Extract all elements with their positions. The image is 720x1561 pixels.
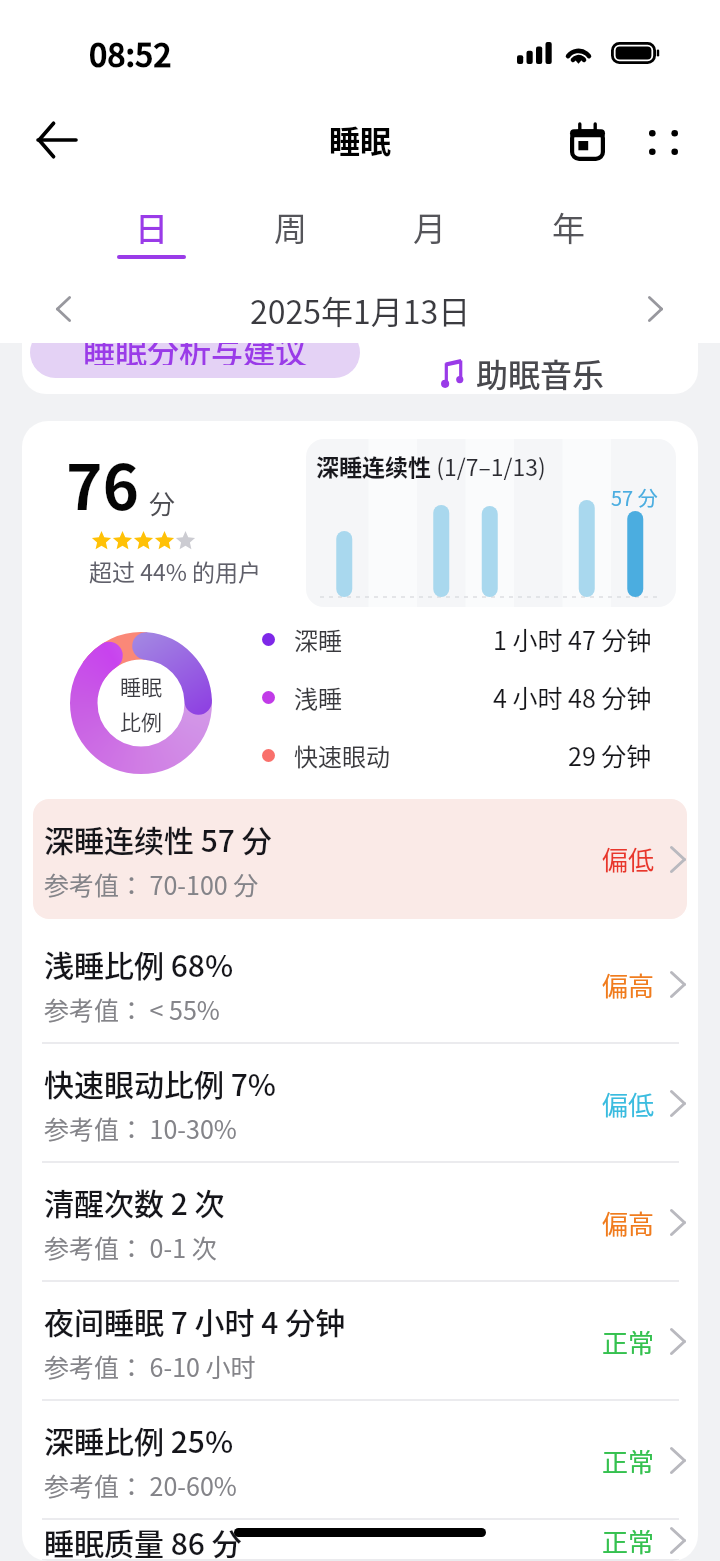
button[interactable]: 清醒次数 2 次	[22, 1163, 698, 1282]
staticText: 睡眠	[120, 671, 162, 701]
staticText: 深睡连续性	[316, 449, 431, 482]
staticText: 快速眼动比例 7%	[44, 1061, 277, 1104]
staticText: 偏高	[602, 966, 655, 1004]
button[interactable]: Previous day	[28, 274, 98, 343]
staticText: 睡眠质量 86 分	[44, 1520, 242, 1561]
button[interactable]: 浅睡	[262, 679, 652, 715]
staticText: 参考值： 10-30%	[44, 1110, 237, 1146]
staticText: 周	[274, 203, 307, 251]
button[interactable]: More options	[628, 110, 698, 174]
button[interactable]: 睡眠质量 86 分	[22, 1520, 698, 1561]
button[interactable]: Next day	[620, 274, 690, 343]
button[interactable]: 深睡	[262, 621, 652, 657]
staticText: 参考值： 70-100 分	[44, 866, 259, 902]
staticText: 清醒次数 2 次	[44, 1180, 225, 1223]
staticText: 参考值： 20-60%	[44, 1467, 237, 1503]
staticText: 年	[552, 203, 585, 251]
staticText: 29 分钟	[568, 737, 652, 773]
staticText: 08:52	[89, 30, 172, 76]
staticText: 正常	[602, 1442, 655, 1480]
button[interactable]: 夜间睡眠 7 小时 4 分钟	[22, 1282, 698, 1401]
button[interactable]: Back	[21, 105, 91, 175]
button[interactable]: 快速眼动比例 7%	[22, 1044, 698, 1163]
button[interactable]: 睡眠分析与建议	[30, 343, 360, 378]
staticText: 57 分	[611, 483, 658, 512]
staticText: 参考值： 0-1 次	[44, 1229, 217, 1265]
staticText: 助眠音乐	[476, 350, 605, 394]
staticText: 分	[149, 484, 176, 522]
staticText: 深睡连续性 57 分	[44, 817, 272, 860]
staticText: 深睡比例 25%	[44, 1418, 234, 1461]
button[interactable]: Calendar	[551, 106, 623, 178]
button[interactable]: 年	[499, 185, 638, 268]
staticText: (1/7–1/13)	[431, 449, 546, 482]
staticText: 偏低	[602, 1085, 655, 1123]
staticText: 睡眠	[329, 117, 391, 162]
button[interactable]: 助眠音乐	[369, 350, 698, 394]
staticText: 参考值： 6-10 小时	[44, 1348, 256, 1384]
button[interactable]: 周	[221, 185, 360, 268]
staticText: 浅睡比例 68%	[44, 942, 234, 985]
staticText: 偏高	[602, 1204, 655, 1242]
staticText: 深睡	[294, 622, 342, 657]
staticText: 睡眠分析与建议	[83, 343, 308, 365]
button[interactable]: 浅睡比例 68%	[22, 925, 698, 1044]
staticText: 浅睡	[294, 680, 342, 715]
staticText: 快速眼动	[294, 738, 390, 773]
staticText: 月	[413, 203, 446, 251]
staticText: 正常	[602, 1522, 655, 1560]
button[interactable]: 深睡比例 25%	[22, 1401, 698, 1520]
button[interactable]: 深睡连续性 57 分	[22, 793, 698, 925]
staticText: 2025年1月13日	[250, 287, 471, 333]
staticText: 参考值： < 55%	[44, 991, 220, 1027]
button[interactable]: 日	[82, 185, 221, 268]
staticText: 1 小时 47 分钟	[493, 621, 652, 657]
staticText: 夜间睡眠 7 小时 4 分钟	[44, 1299, 346, 1342]
staticText: 比例	[120, 706, 162, 736]
staticText: 76	[66, 438, 140, 528]
staticText: 正常	[602, 1323, 655, 1361]
staticText: 日	[135, 203, 168, 251]
button[interactable]: 快速眼动	[262, 737, 652, 773]
button[interactable]: 月	[360, 185, 499, 268]
staticText: 偏低	[602, 840, 655, 878]
staticText: 4 小时 48 分钟	[493, 679, 652, 715]
staticText: 超过 44% 的用户	[89, 554, 262, 587]
